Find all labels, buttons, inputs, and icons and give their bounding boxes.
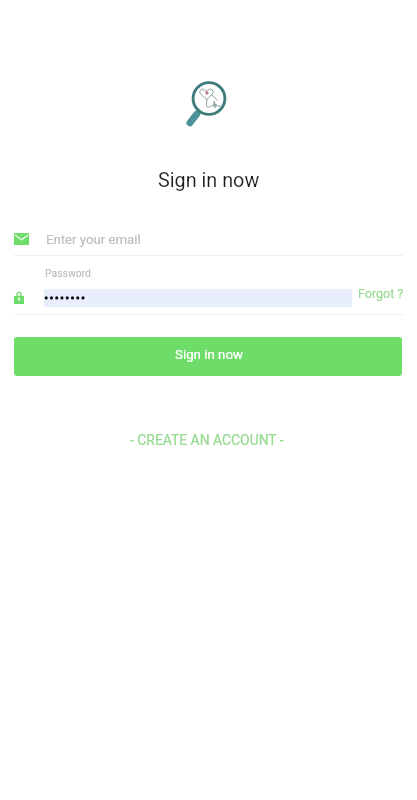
staticText: Sign in now [175, 347, 244, 363]
button[interactable]: - CREATE AN ACCOUNT - [130, 432, 284, 448]
staticText: Sign in now [158, 169, 260, 192]
button[interactable]: Sign in now [14, 337, 402, 376]
other: Email [14, 233, 29, 245]
staticText: Password [45, 267, 91, 279]
other: Password [14, 291, 24, 304]
button[interactable]: Forgot ? [358, 286, 404, 301]
staticText: Enter your email [46, 232, 141, 247]
other: App logo [176, 74, 232, 130]
button[interactable]: Email [0, 223, 417, 255]
